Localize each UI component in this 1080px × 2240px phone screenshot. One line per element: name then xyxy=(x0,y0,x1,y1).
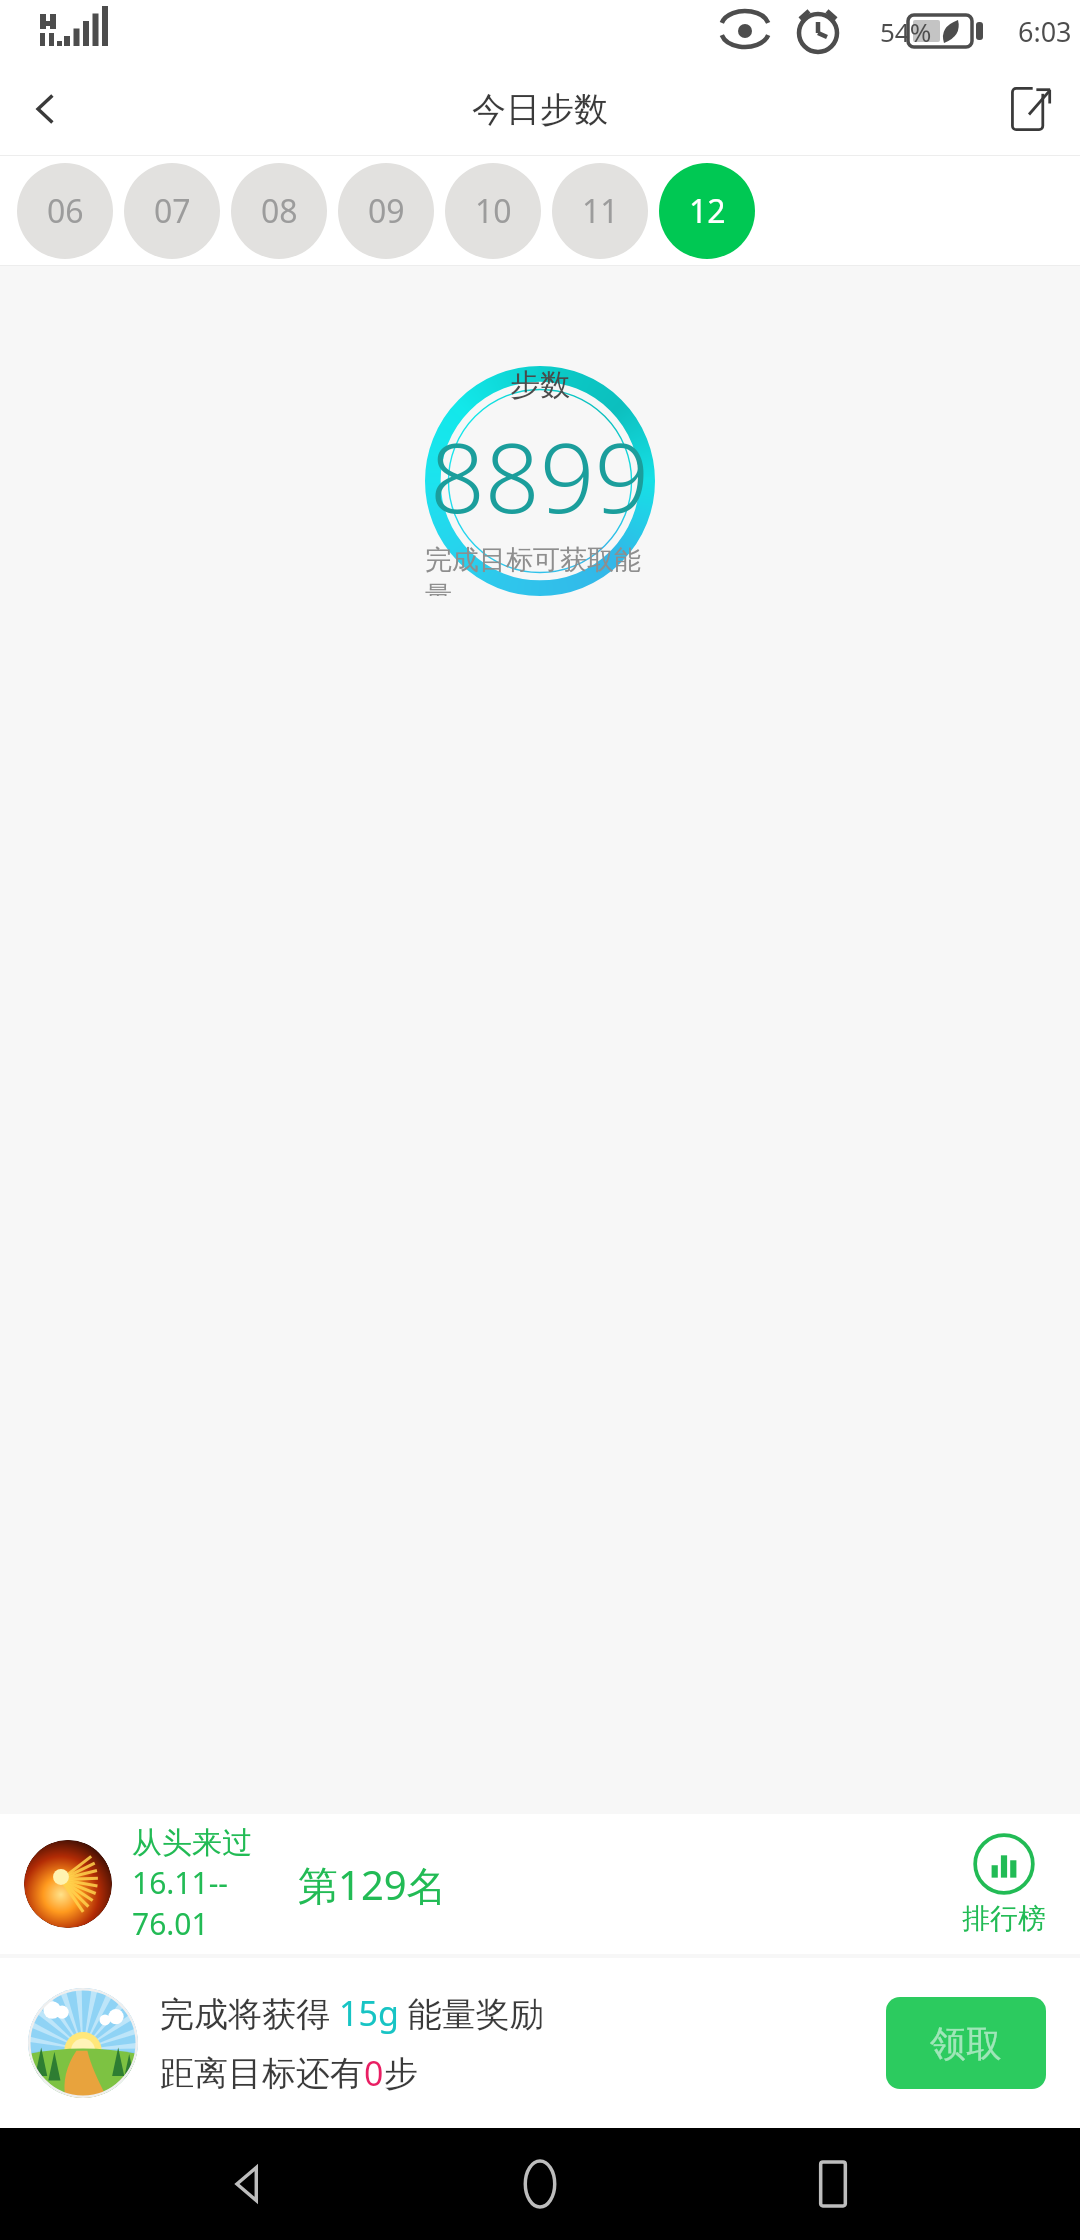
button[interactable]: 09 xyxy=(338,163,434,259)
staticText: 能量奖励 xyxy=(399,1990,544,2036)
button[interactable]: 08 xyxy=(231,163,327,259)
staticText: 领取 xyxy=(930,2021,1002,2066)
staticText: 08 xyxy=(261,189,298,233)
button[interactable]: 11 xyxy=(552,163,648,259)
staticText: 6:03 xyxy=(1018,13,1072,50)
staticText: 距离目标还有 xyxy=(160,2052,364,2095)
staticText: 76.01 xyxy=(132,1903,209,1944)
staticText: 8899 xyxy=(430,410,650,541)
button[interactable]: Share xyxy=(994,74,1064,144)
button[interactable]: 12 xyxy=(659,163,755,259)
staticText: 完成将获得 xyxy=(160,1990,339,2036)
staticText: 完成目标可获取能量 xyxy=(425,543,655,596)
staticText: 11 xyxy=(582,189,619,233)
button[interactable]: 10 xyxy=(445,163,541,259)
staticText: 步 xyxy=(384,2052,418,2095)
staticText: 16.11-- xyxy=(132,1862,228,1903)
staticText: 06 xyxy=(47,189,84,233)
button[interactable]: Back xyxy=(203,2139,293,2229)
button[interactable]: 领取 xyxy=(886,1997,1046,2089)
staticText: 12 xyxy=(689,189,726,233)
staticText: 07 xyxy=(154,189,191,233)
button[interactable]: 从头来过 xyxy=(0,1814,1080,1954)
button[interactable]: Recents xyxy=(788,2139,878,2229)
button[interactable]: 排行榜 xyxy=(962,1833,1046,1936)
staticText: 排行榜 xyxy=(962,1901,1046,1936)
staticText: 15g xyxy=(339,1990,399,2036)
button[interactable]: 06 xyxy=(17,163,113,259)
button[interactable]: 07 xyxy=(124,163,220,259)
staticText: 0 xyxy=(364,2050,384,2096)
staticText: 10 xyxy=(475,189,512,233)
staticText: 步数 xyxy=(510,366,570,404)
staticText: 09 xyxy=(368,189,405,233)
staticText: 54% xyxy=(880,14,932,49)
button[interactable]: Back xyxy=(14,77,78,141)
staticText: 第129名 xyxy=(298,1857,447,1912)
staticText: 从头来过 xyxy=(132,1824,252,1862)
staticText: 今日步数 xyxy=(472,88,608,131)
button[interactable]: Home xyxy=(495,2139,585,2229)
